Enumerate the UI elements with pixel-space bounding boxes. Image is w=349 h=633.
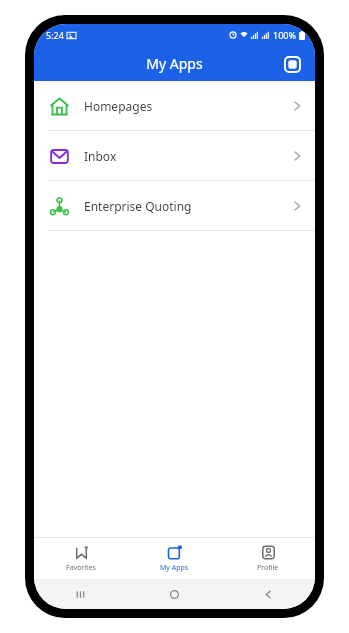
staticText: Inbox <box>84 148 117 164</box>
button[interactable]: Recent apps <box>34 579 127 609</box>
button[interactable]: Profile <box>221 538 315 579</box>
staticText: Favorites <box>66 563 96 573</box>
button[interactable]: Back <box>221 579 315 609</box>
staticText: Homepages <box>84 98 153 114</box>
staticText: My Apps <box>146 54 203 73</box>
staticText: Enterprise Quoting <box>84 198 192 214</box>
staticText: 5:24 <box>46 29 64 41</box>
button[interactable]: Account <box>281 53 303 75</box>
staticText: 100% <box>273 29 296 41</box>
staticText: My Apps <box>160 563 189 573</box>
button[interactable]: Enterprise Quoting <box>34 181 315 230</box>
button[interactable]: Favorites <box>34 538 127 579</box>
button[interactable]: Home <box>127 579 221 609</box>
button[interactable]: My Apps <box>127 538 221 579</box>
button[interactable]: Inbox <box>34 131 315 180</box>
button[interactable]: Homepages <box>34 81 315 130</box>
staticText: Profile <box>257 563 279 573</box>
